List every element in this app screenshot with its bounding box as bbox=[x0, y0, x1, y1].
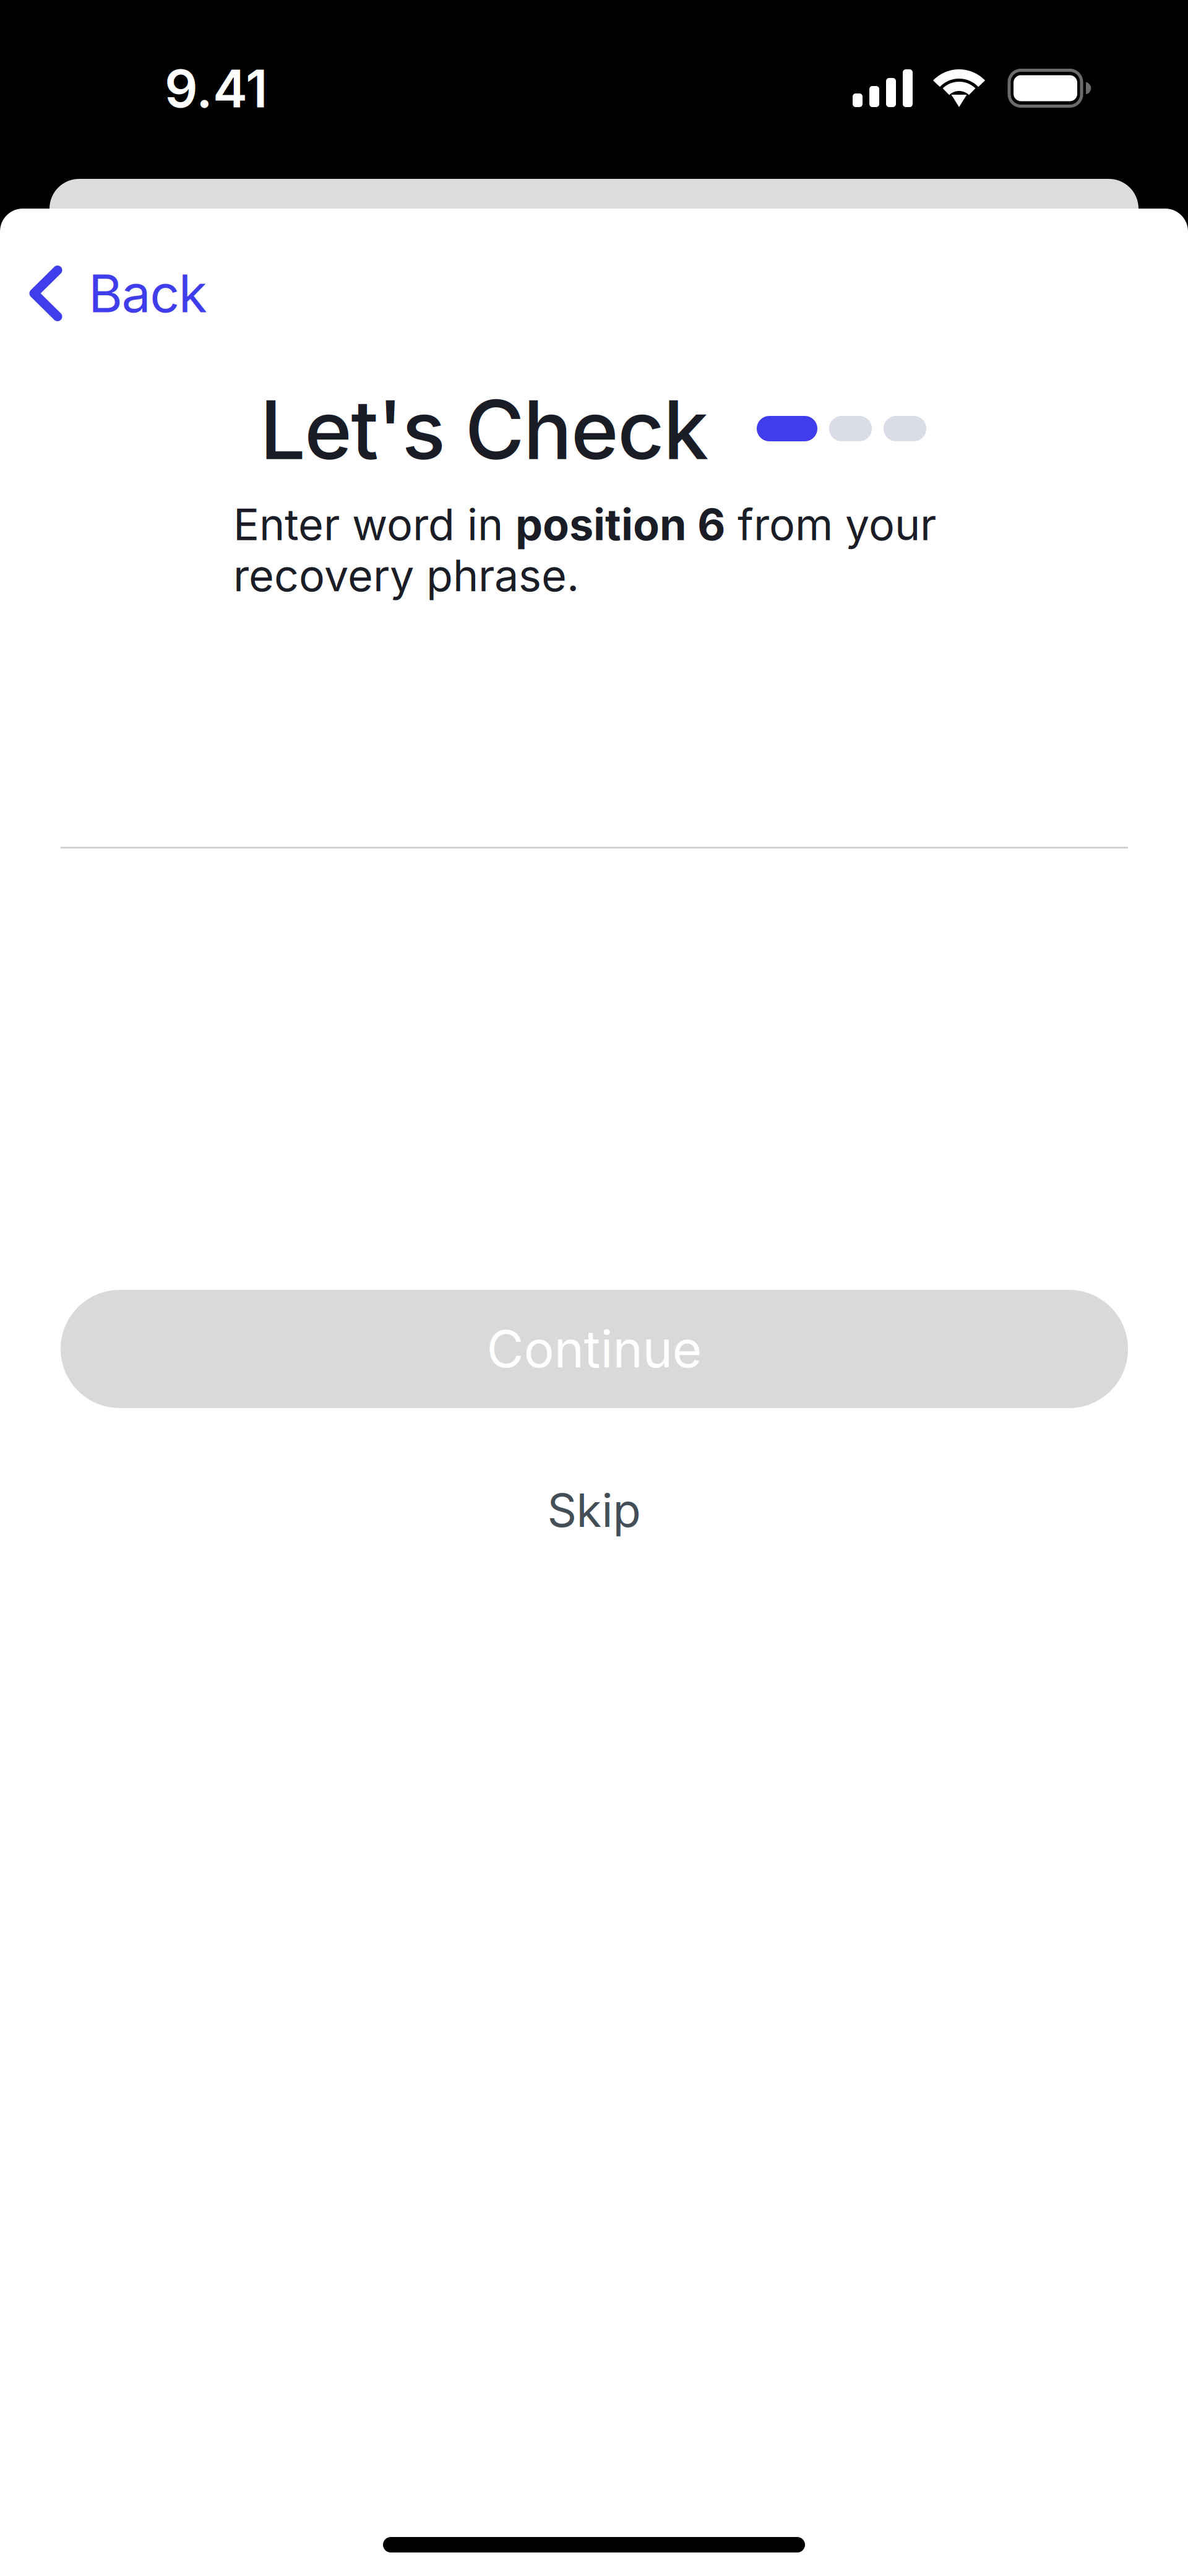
staticText: Enter word in position 6 from your recov… bbox=[233, 499, 936, 601]
staticText: Continue bbox=[487, 1318, 702, 1380]
button[interactable]: Skip bbox=[470, 1473, 718, 1547]
button[interactable]: Back bbox=[12, 250, 241, 337]
staticText: 9.41 bbox=[165, 57, 268, 120]
staticText: Let's Check bbox=[260, 380, 708, 479]
staticText: Back bbox=[88, 262, 207, 325]
button[interactable]: Continue bbox=[61, 1290, 1128, 1408]
staticText: Skip bbox=[547, 1482, 641, 1538]
